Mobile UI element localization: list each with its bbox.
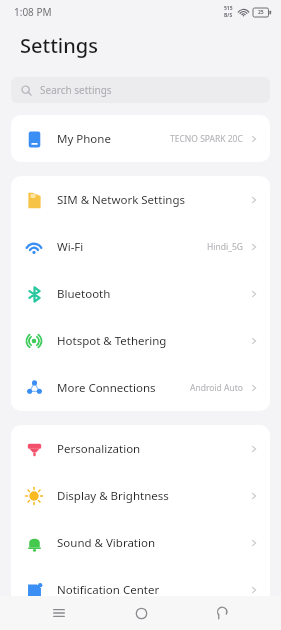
staticText: Sound & Vibration xyxy=(57,535,156,551)
staticText: Bluetooth xyxy=(57,286,111,302)
staticText: Android Auto xyxy=(190,382,243,394)
staticText: Wi-Fi xyxy=(57,239,84,255)
button[interactable]: Personalization xyxy=(11,425,270,472)
button[interactable]: Back xyxy=(200,596,244,630)
button[interactable]: Search settings xyxy=(11,77,270,103)
button[interactable]: More Connections xyxy=(11,364,270,411)
staticText: Hindi_5G xyxy=(207,241,243,253)
staticText: Search settings xyxy=(40,83,112,97)
staticText: Notification Center xyxy=(57,582,160,598)
button[interactable]: Recent apps xyxy=(37,596,81,630)
button[interactable]: Notification Center xyxy=(11,566,270,613)
button[interactable]: Bluetooth xyxy=(11,270,270,317)
staticText: 25 xyxy=(258,9,264,16)
staticText: Display & Brightness xyxy=(57,488,169,504)
button[interactable]: Home xyxy=(119,596,163,630)
staticText: 1:08 PM xyxy=(14,5,52,19)
staticText: 515 xyxy=(224,5,233,12)
staticText: SIM & Network Settings xyxy=(57,192,186,208)
staticText: B/S xyxy=(224,12,233,19)
staticText: My Phone xyxy=(57,131,111,147)
button[interactable]: Hotspot & Tethering xyxy=(11,317,270,364)
button[interactable]: SIM & Network Settings xyxy=(11,176,270,223)
button[interactable]: Display & Brightness xyxy=(11,472,270,519)
button[interactable]: Sound & Vibration xyxy=(11,519,270,566)
staticText: Settings xyxy=(20,32,98,59)
button[interactable]: My Phone xyxy=(11,115,270,162)
button[interactable]: Wi-Fi xyxy=(11,223,270,270)
staticText: Hotspot & Tethering xyxy=(57,333,167,349)
staticText: More Connections xyxy=(57,380,156,396)
staticText: Personalization xyxy=(57,441,141,457)
staticText: TECNO SPARK 20C xyxy=(170,133,243,145)
